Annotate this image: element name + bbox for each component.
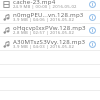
button[interactable]: n0mgPEU...vn.128.mp3 [0, 11, 100, 24]
staticText: cache-23.mp4 [13, 0, 56, 5]
button[interactable]: A30MTszS3Vvy.128.mp3 [0, 38, 100, 51]
staticText: 24.9 MB | 00:00 | 2016-05-02 [13, 4, 77, 10]
button[interactable]: oHqcvpIxxPVw.128.mp3 [0, 24, 100, 37]
button[interactable]: Info [88, 13, 96, 21]
button[interactable]: Info [88, 40, 96, 48]
button[interactable]: Info [88, 0, 96, 8]
staticText: oHqcvpIxxPVw.128.mp3 [13, 23, 86, 31]
button[interactable]: cache-23.mp4 [0, 0, 100, 11]
staticText: n0mgPEU...vn.128.mp3 [13, 10, 84, 18]
staticText: 3.9 MB | 04:06 | 2016-05-02 [13, 17, 74, 23]
button[interactable]: Info [88, 26, 96, 34]
staticText: 3.9 MB | 04:03 | 2016-05-02 [13, 44, 74, 50]
staticText: A30MTszS3Vvy.128.mp3 [13, 37, 86, 45]
staticText: 2.8 MB | 02:57 | 2016-05-02 [13, 30, 74, 36]
